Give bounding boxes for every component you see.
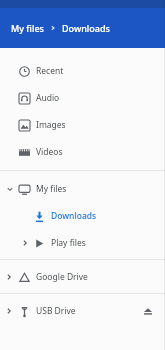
button[interactable]: Downloads [62,22,110,34]
other: Eject USB Drive [143,306,153,316]
staticText: Videos [36,146,63,158]
staticText: Audio [36,92,60,104]
button[interactable]: Images [0,111,165,138]
button[interactable]: Videos [0,138,165,165]
staticText: Downloads [51,210,97,222]
staticText: Downloads [62,22,110,34]
button[interactable]: My files [11,22,44,34]
staticText: Images [36,119,66,131]
staticText: USB Drive [36,305,76,317]
button[interactable]: Recent [0,57,165,84]
staticText: Recent [36,65,64,77]
button[interactable]: USB Drive [0,297,165,324]
button[interactable]: Play files [0,229,165,256]
button[interactable]: Audio [0,84,165,111]
staticText: My files [11,22,44,34]
staticText: Google Drive [36,271,88,283]
staticText: My files [36,183,67,195]
button[interactable]: Downloads [0,202,165,229]
staticText: Play files [51,237,86,249]
button[interactable]: Google Drive [0,263,165,290]
button[interactable]: My files [0,175,165,202]
